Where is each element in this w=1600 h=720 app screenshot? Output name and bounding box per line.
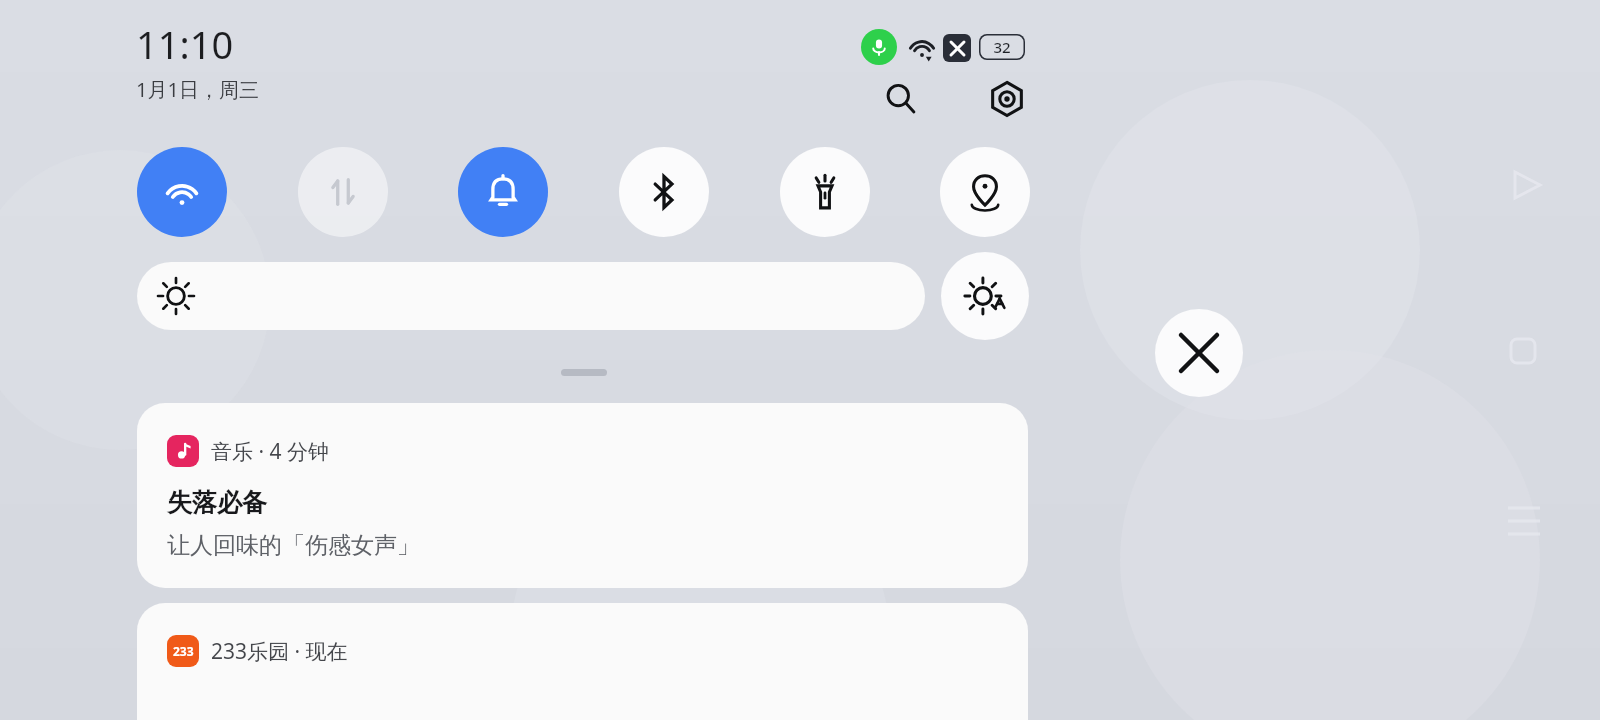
staticText: 音乐 · 4 分钟 xyxy=(211,437,330,466)
button[interactable]: 233 xyxy=(137,603,1028,720)
staticText: 11:10 xyxy=(136,18,234,70)
button[interactable]: Search xyxy=(872,70,930,128)
button[interactable]: 音乐 · 4 分钟 xyxy=(137,403,1028,588)
staticText: 让人回味的「伤感女声」 xyxy=(167,531,420,560)
button[interactable]: Quick setting xyxy=(137,147,227,237)
button[interactable]: Quick setting xyxy=(780,147,870,237)
button[interactable]: Quick setting xyxy=(940,147,1030,237)
button[interactable]: Quick setting xyxy=(619,147,709,237)
staticText: 失落必备 xyxy=(167,487,267,518)
staticText: 32 xyxy=(993,37,1011,57)
staticText: 1月1日，周三 xyxy=(136,76,259,103)
button[interactable]: Auto brightness xyxy=(941,252,1029,340)
button[interactable]: Mobile data xyxy=(298,147,388,237)
button[interactable] xyxy=(137,262,925,330)
other: Microphone in use xyxy=(861,29,897,65)
button[interactable]: Settings xyxy=(978,70,1036,128)
button[interactable]: Close xyxy=(1155,309,1243,397)
staticText: 233 xyxy=(173,643,194,659)
button[interactable]: Quick setting xyxy=(458,147,548,237)
staticText: 233乐园 · 现在 xyxy=(211,637,348,666)
